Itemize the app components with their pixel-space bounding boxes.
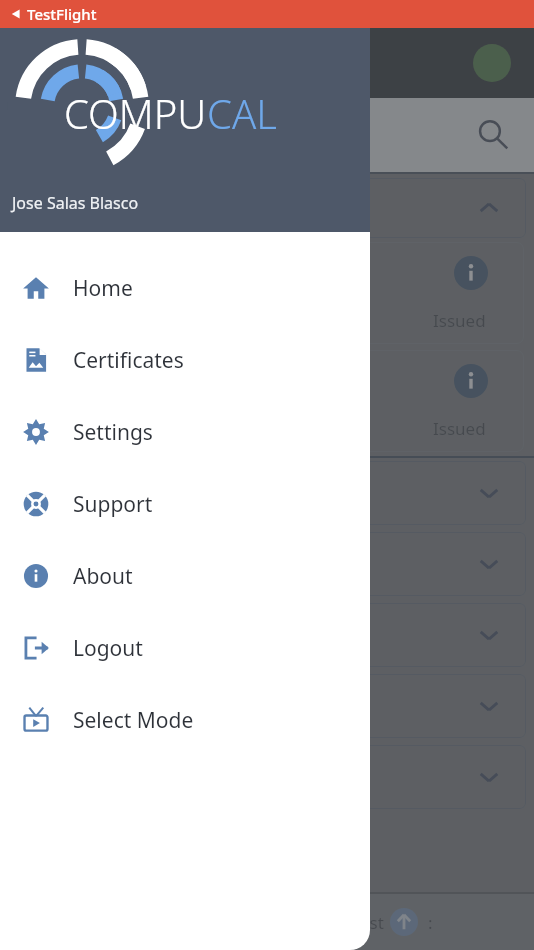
- button[interactable]: Info: [454, 364, 488, 398]
- button[interactable]: Info: [10, 242, 524, 344]
- button[interactable]: [8, 674, 526, 738]
- button[interactable]: [8, 178, 526, 238]
- button[interactable]: Status indicator: [473, 44, 511, 82]
- button[interactable]: Home: [0, 252, 370, 324]
- staticText: Select Mode: [73, 706, 194, 735]
- button[interactable]: Settings: [0, 396, 370, 468]
- staticText: Certificates: [73, 346, 184, 375]
- button[interactable]: [8, 532, 526, 596]
- button[interactable]: Search: [474, 116, 512, 154]
- staticText: :: [428, 911, 433, 934]
- staticText: Settings: [73, 418, 153, 447]
- staticText: Logout: [73, 634, 143, 663]
- staticText: Home: [73, 274, 133, 303]
- button[interactable]: Info: [454, 256, 488, 290]
- button[interactable]: Logout: [0, 612, 370, 684]
- staticText: CAL: [207, 86, 277, 140]
- button[interactable]: Scroll to top: [390, 908, 418, 936]
- button[interactable]: ration: [10, 350, 524, 452]
- button[interactable]: [8, 745, 526, 809]
- button[interactable]: [8, 461, 526, 525]
- staticText: Issued: [433, 309, 486, 332]
- button[interactable]: About: [0, 540, 370, 612]
- staticText: COMPU: [64, 86, 207, 140]
- staticText: Support: [73, 490, 153, 519]
- staticText: Jose Salas Blasco: [12, 192, 139, 214]
- button[interactable]: Support: [0, 468, 370, 540]
- staticText: Issued: [433, 417, 486, 440]
- staticText: ast: [360, 911, 384, 934]
- staticText: About: [73, 562, 133, 591]
- staticText: TestFlight: [27, 4, 97, 24]
- button[interactable]: [8, 603, 526, 667]
- button[interactable]: Certificates: [0, 324, 370, 396]
- button[interactable]: Select Mode: [0, 684, 370, 756]
